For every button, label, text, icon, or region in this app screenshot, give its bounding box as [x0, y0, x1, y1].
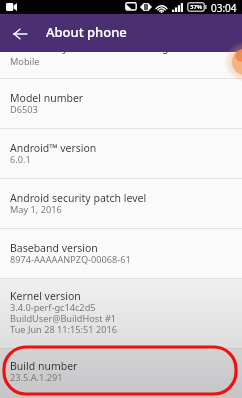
button[interactable]: Model number — [0, 79, 242, 128]
staticText: Model number — [10, 91, 84, 105]
staticText: D6503 — [10, 103, 38, 116]
staticText: 37% — [190, 3, 203, 11]
staticText: Android security patch level — [10, 191, 147, 205]
staticText: Baseband version — [10, 241, 98, 255]
staticText: 3.4.0-perf-gc14c2d5 — [10, 301, 96, 314]
staticText: 6.0.1 — [10, 153, 31, 166]
button[interactable]: Build number — [0, 349, 242, 398]
button[interactable]: Back — [3, 17, 37, 51]
staticText: Send anonymous data and usage informatio… — [10, 52, 236, 54]
staticText: 03:04 — [211, 1, 237, 15]
staticText: May 1, 2016 — [10, 203, 62, 216]
button[interactable]: Android security patch level — [0, 179, 242, 228]
staticText: 23.5.A.1.291 — [10, 371, 63, 384]
button[interactable]: Kernel version — [0, 279, 242, 348]
staticText: Android™ version — [10, 141, 97, 155]
staticText: BuildUser@BuildHost #1 — [10, 312, 117, 325]
button[interactable]: Send anonymous data and usage informatio… — [0, 52, 242, 78]
staticText: About phone — [46, 23, 127, 41]
staticText: Tue Jun 28 11:15:51 2016 — [10, 323, 117, 336]
staticText: Kernel version — [10, 289, 81, 303]
staticText: Mobile — [10, 55, 40, 66]
button[interactable]: Baseband version — [0, 229, 242, 278]
staticText: 8974-AAAAANPZQ-00068-61 — [10, 253, 131, 266]
button[interactable]: Android™ version — [0, 129, 242, 178]
staticText: Build number — [10, 359, 78, 373]
